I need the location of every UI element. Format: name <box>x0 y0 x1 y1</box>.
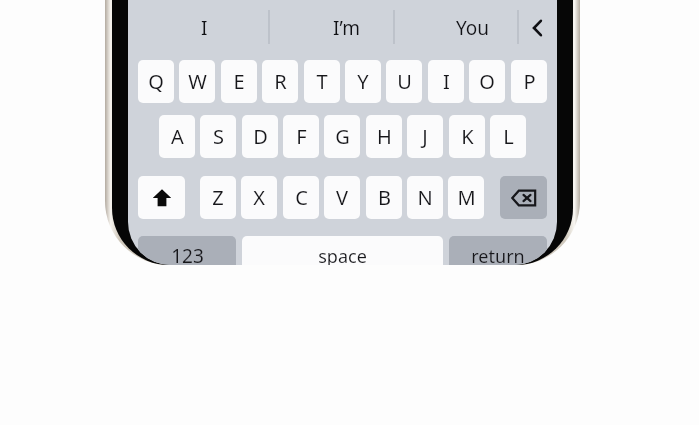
staticText: T <box>316 68 328 95</box>
button[interactable]: M <box>448 176 484 219</box>
button[interactable]: X <box>241 176 277 219</box>
staticText: C <box>295 184 308 211</box>
staticText: G <box>335 123 350 150</box>
button[interactable]: B <box>366 176 402 219</box>
staticText: X <box>253 184 265 211</box>
button[interactable]: Z <box>200 176 236 219</box>
staticText: You <box>456 15 490 41</box>
button[interactable]: You <box>418 6 528 50</box>
staticText: space <box>318 244 367 265</box>
staticText: F <box>296 123 307 150</box>
button[interactable]: O <box>469 60 505 103</box>
button[interactable]: H <box>366 115 402 158</box>
button[interactable]: Collapse predictions <box>518 6 557 50</box>
staticText: M <box>457 184 476 211</box>
staticText: A <box>171 123 184 150</box>
button[interactable]: F <box>283 115 319 158</box>
staticText: I <box>201 15 208 41</box>
button[interactable]: I <box>149 6 259 50</box>
button[interactable]: U <box>386 60 422 103</box>
button[interactable]: E <box>221 60 257 103</box>
button[interactable]: Q <box>138 60 174 103</box>
button[interactable]: P <box>511 60 547 103</box>
button[interactable]: S <box>200 115 236 158</box>
button[interactable]: T <box>304 60 340 103</box>
staticText: N <box>417 184 433 211</box>
staticText: O <box>479 68 495 95</box>
button[interactable]: I <box>428 60 464 103</box>
staticText: Y <box>357 68 369 95</box>
staticText: R <box>274 68 287 95</box>
staticText: K <box>461 123 474 150</box>
button[interactable]: G <box>324 115 360 158</box>
staticText: 123 <box>171 243 204 265</box>
button[interactable]: R <box>262 60 298 103</box>
staticText: U <box>397 68 412 95</box>
staticText: Z <box>212 184 224 211</box>
button[interactable]: J <box>407 115 443 158</box>
button[interactable]: L <box>490 115 526 158</box>
button[interactable]: C <box>283 176 319 219</box>
staticText: W <box>188 68 207 95</box>
staticText: Q <box>148 68 164 95</box>
staticText: J <box>422 123 428 150</box>
staticText: P <box>523 68 536 95</box>
button[interactable]: Backspace <box>500 176 547 219</box>
staticText: D <box>253 123 268 150</box>
staticText: L <box>503 123 514 150</box>
staticText: I <box>443 68 450 95</box>
staticText: I’m <box>333 15 360 41</box>
staticText: E <box>233 68 245 95</box>
button[interactable]: W <box>179 60 215 103</box>
staticText: V <box>336 184 348 211</box>
staticText: B <box>378 184 391 211</box>
staticText: S <box>213 123 224 150</box>
button[interactable]: A <box>159 115 195 158</box>
button[interactable]: return <box>449 236 547 265</box>
button[interactable]: I’m <box>291 6 401 50</box>
button[interactable]: V <box>324 176 360 219</box>
button[interactable]: D <box>242 115 278 158</box>
button[interactable]: Y <box>345 60 381 103</box>
button[interactable]: N <box>407 176 443 219</box>
button[interactable]: space <box>242 236 443 265</box>
staticText: H <box>377 123 392 150</box>
button[interactable]: 123 <box>138 236 236 265</box>
button[interactable]: Shift <box>138 176 185 219</box>
button[interactable]: K <box>449 115 485 158</box>
staticText: return <box>471 244 525 265</box>
